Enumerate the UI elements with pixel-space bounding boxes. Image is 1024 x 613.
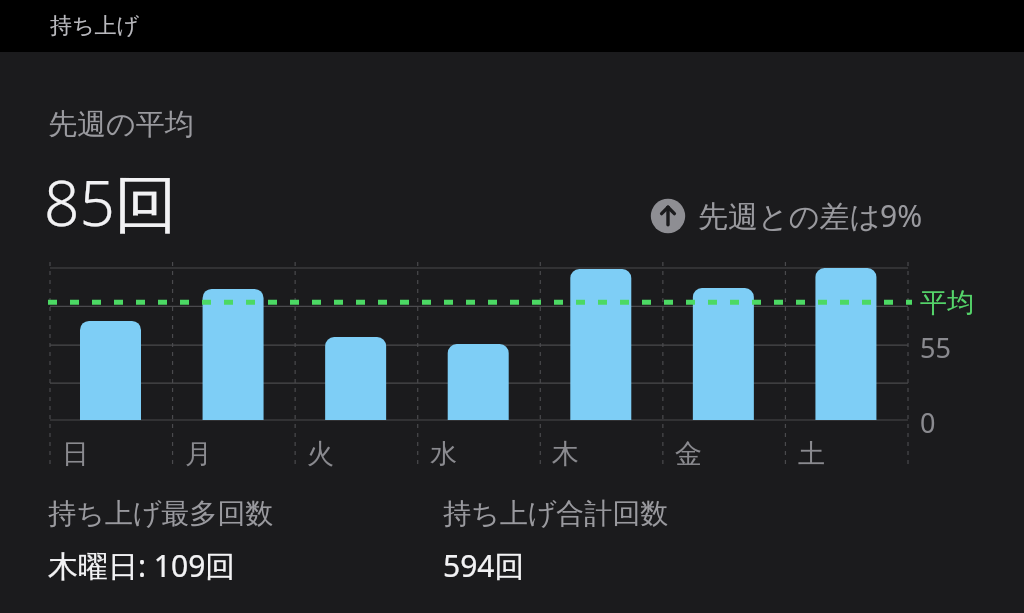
staticText: 平均 (920, 286, 974, 320)
staticText: 木曜日: 109回 (48, 545, 236, 586)
staticText: 土 (798, 437, 825, 471)
other: 増加 (648, 196, 688, 236)
staticText: 日 (62, 437, 89, 471)
staticText: 木 (552, 437, 579, 471)
staticText: 持ち上げ (50, 12, 140, 40)
staticText: 金 (675, 437, 702, 471)
button[interactable]: 持ち上げ合計回数 (443, 496, 1000, 586)
button[interactable]: 増加 (648, 195, 923, 236)
staticText: 先週の平均 (48, 106, 194, 143)
staticText: 先週との差は9% (698, 195, 923, 236)
staticText: 水 (430, 437, 457, 471)
staticText: 0 (920, 404, 936, 441)
staticText: 持ち上げ合計回数 (443, 496, 669, 531)
staticText: 594回 (443, 545, 525, 586)
staticText: 火 (307, 437, 334, 471)
staticText: 持ち上げ最多回数 (48, 496, 274, 531)
staticText: 85回 (44, 160, 177, 245)
staticText: 55 (920, 329, 951, 366)
button[interactable]: 持ち上げ最多回数 (48, 496, 443, 586)
staticText: 月 (185, 437, 212, 471)
